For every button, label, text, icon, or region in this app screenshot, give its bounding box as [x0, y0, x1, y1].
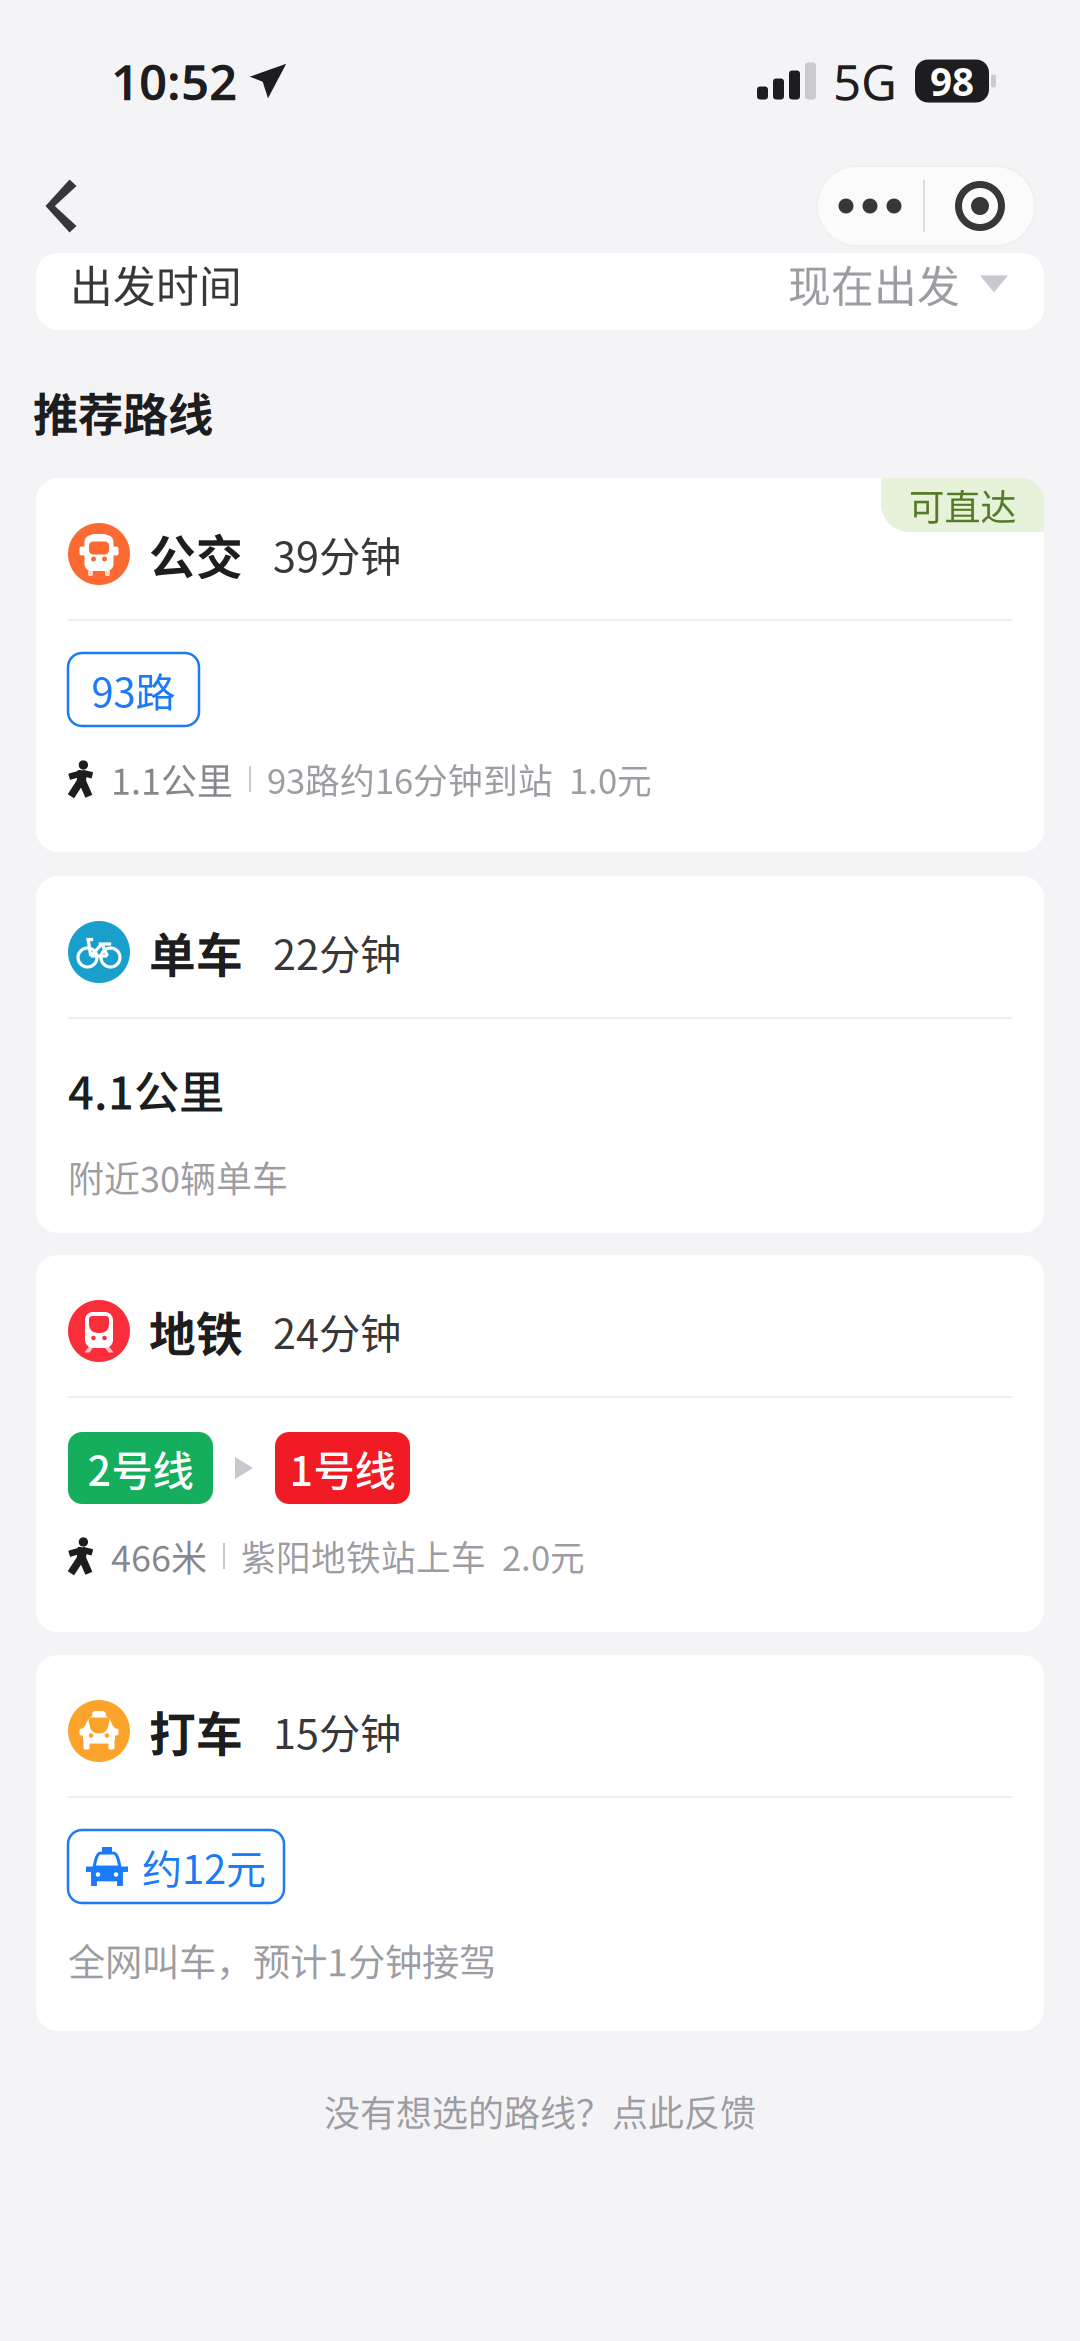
staticText: 单车	[149, 918, 243, 986]
staticText: 4.1公里	[68, 1057, 224, 1123]
staticText: 出发时间	[70, 253, 242, 315]
staticText: 约12元	[142, 1837, 266, 1895]
staticText: 打车	[149, 1697, 243, 1765]
button[interactable]: 公交	[36, 478, 1044, 852]
button[interactable]: 打车	[36, 1655, 1044, 2031]
staticText: 1号线	[289, 1438, 395, 1498]
staticText: 现在出发	[788, 253, 960, 315]
staticText: 98	[930, 55, 974, 107]
staticText: 紫阳地铁站上车 2.0元	[241, 1531, 585, 1581]
button[interactable]: 没有想选的路线？点此反馈	[0, 2081, 1080, 2141]
staticText: 93路	[91, 660, 175, 718]
staticText: 22分钟	[273, 922, 401, 982]
staticText: 5G	[833, 48, 897, 114]
staticText: 全网叫车，预计1分钟接驾	[68, 1933, 496, 1987]
staticText: 推荐路线	[33, 379, 213, 445]
staticText: 39分钟	[273, 524, 401, 584]
staticText: 没有想选的路线？点此反馈	[324, 2085, 756, 2137]
staticText: 1.1公里	[111, 753, 233, 805]
staticText: 附近30辆单车	[68, 1151, 288, 1203]
staticText: 2号线	[87, 1438, 193, 1498]
button[interactable]: 单车	[36, 876, 1044, 1233]
staticText: 24分钟	[273, 1301, 401, 1361]
staticText: 10:52	[111, 48, 237, 114]
button[interactable]: 地铁	[36, 1255, 1044, 1632]
staticText: 15分钟	[273, 1701, 401, 1761]
staticText: 可直达	[908, 479, 1016, 531]
staticText: 地铁	[149, 1297, 243, 1365]
button[interactable]: More	[817, 166, 923, 246]
staticText: 93路约16分钟到站 1.0元	[267, 754, 652, 804]
staticText: 公交	[149, 520, 243, 588]
button[interactable]: Close	[925, 166, 1035, 246]
button[interactable]: Back	[0, 166, 122, 246]
staticText: 466米	[111, 1530, 207, 1582]
